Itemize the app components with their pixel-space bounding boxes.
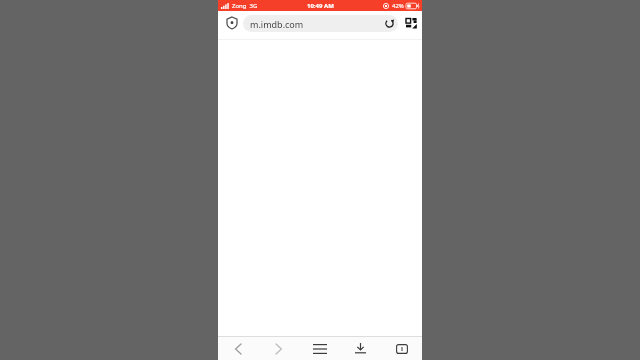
button[interactable]	[340, 337, 381, 360]
staticText: 42%	[392, 2, 404, 10]
button[interactable]	[226, 16, 238, 30]
staticText: Zong 3G	[232, 2, 258, 10]
button[interactable]	[299, 337, 340, 360]
staticText: m.imdb.com	[250, 18, 304, 30]
button[interactable]	[406, 18, 417, 29]
staticText: 10:49 AM	[307, 2, 334, 10]
button[interactable]	[258, 337, 299, 360]
button[interactable]: m.imdb.com	[243, 15, 398, 32]
button[interactable]	[218, 337, 258, 360]
button[interactable]	[385, 19, 394, 28]
button[interactable]	[381, 337, 422, 360]
